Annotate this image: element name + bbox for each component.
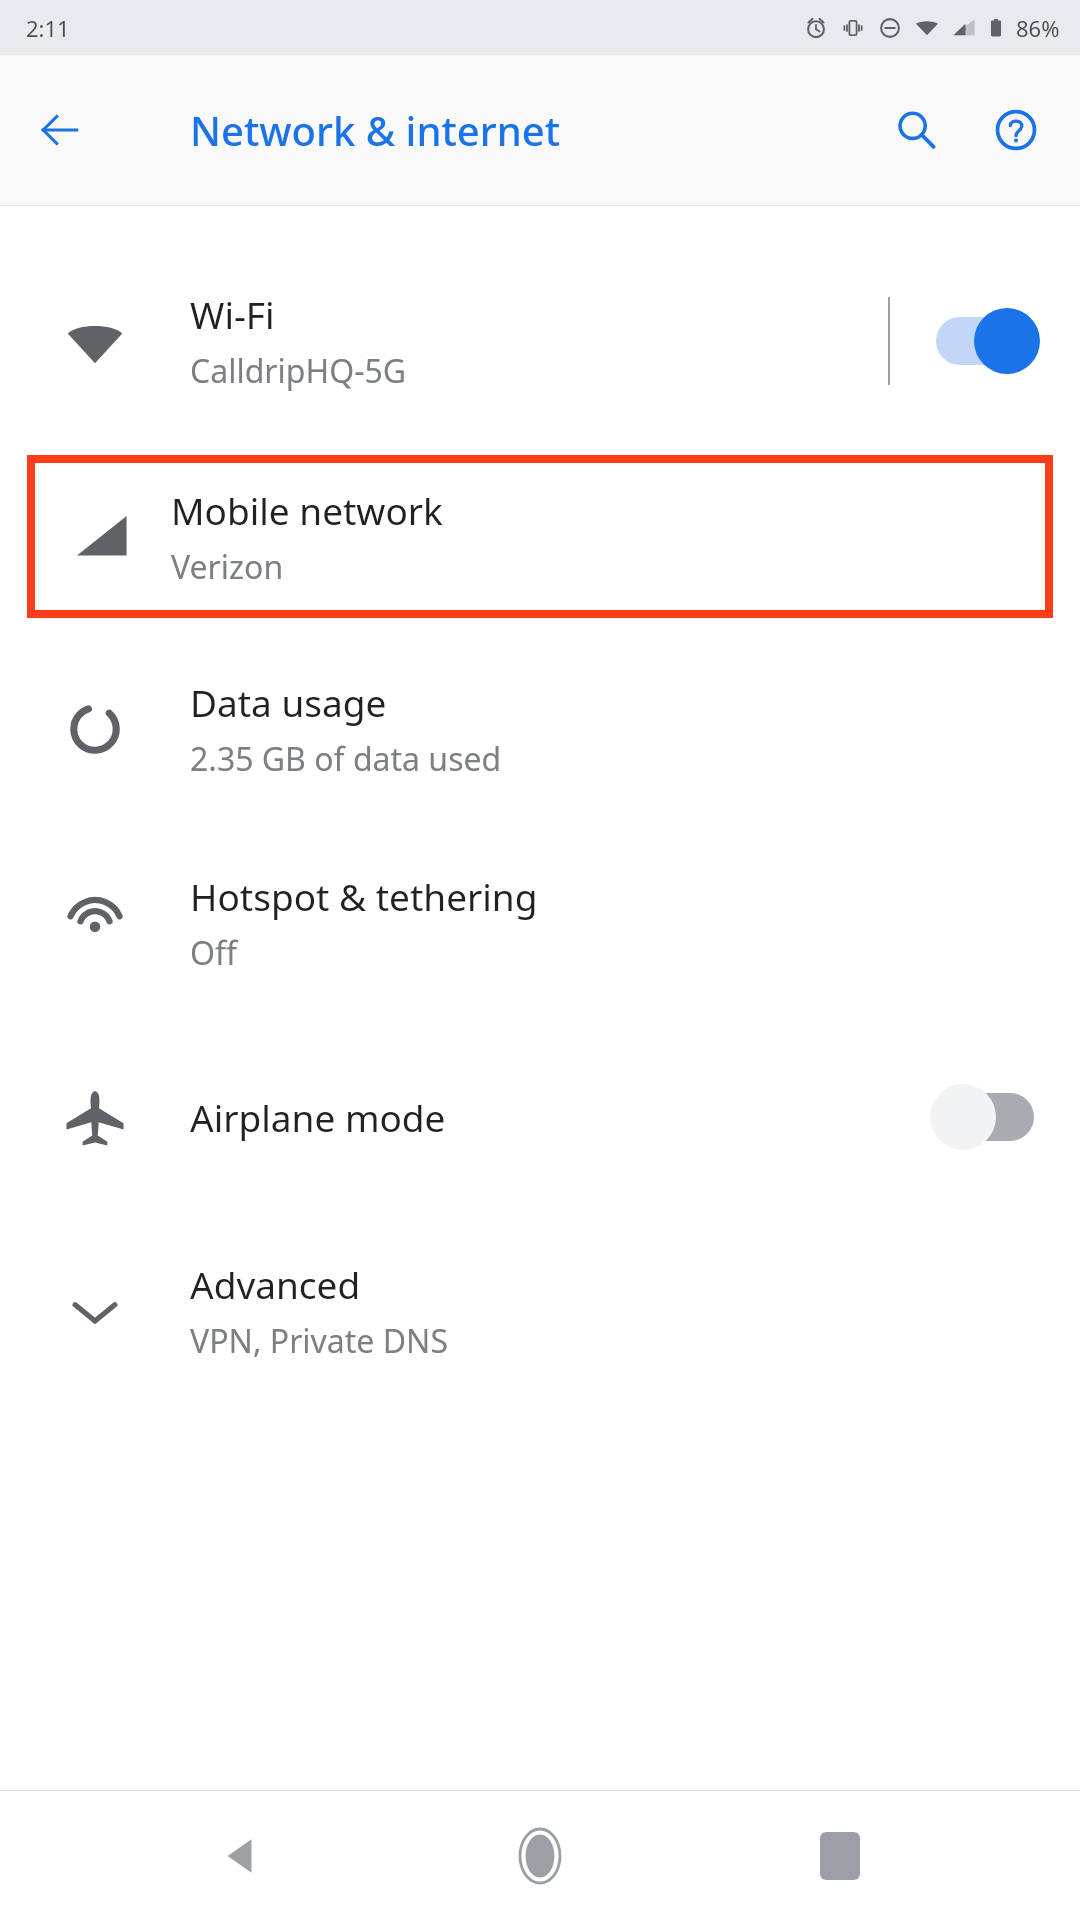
staticText: 2.35 GB of data used	[190, 737, 502, 781]
button[interactable]: Airplane mode	[0, 1020, 1080, 1214]
staticText: 2:11	[26, 13, 70, 43]
staticText: Airplane mode	[190, 1092, 446, 1142]
button[interactable]: Wi-Fi on	[890, 244, 1080, 438]
button[interactable]: Search	[880, 94, 952, 166]
staticText: Wi-Fi	[190, 289, 275, 339]
button[interactable]: Airplane mode off	[890, 1020, 1080, 1214]
button[interactable]: Advanced	[0, 1214, 1080, 1408]
button[interactable]: Data usage	[0, 632, 1080, 826]
button[interactable]: Mobile network	[35, 463, 1045, 610]
staticText: Mobile network	[171, 485, 443, 535]
button[interactable]: Hotspot & tethering	[0, 826, 1080, 1020]
button[interactable]: Wi-Fi	[0, 244, 1080, 438]
staticText: CalldripHQ-5G	[190, 349, 407, 393]
staticText: Off	[190, 931, 238, 975]
button[interactable]: Recent apps	[790, 1806, 890, 1906]
button[interactable]: Home	[490, 1806, 590, 1906]
staticText: 86%	[1016, 13, 1060, 43]
button[interactable]: Back	[190, 1806, 290, 1906]
button[interactable]: Back	[26, 96, 94, 164]
staticText: Data usage	[190, 677, 387, 727]
staticText: VPN, Private DNS	[190, 1319, 448, 1363]
staticText: Network & internet	[190, 103, 561, 157]
staticText: Advanced	[190, 1259, 361, 1309]
staticText: Hotspot & tethering	[190, 871, 538, 921]
staticText: Verizon	[171, 545, 284, 589]
button[interactable]: Help	[980, 94, 1052, 166]
